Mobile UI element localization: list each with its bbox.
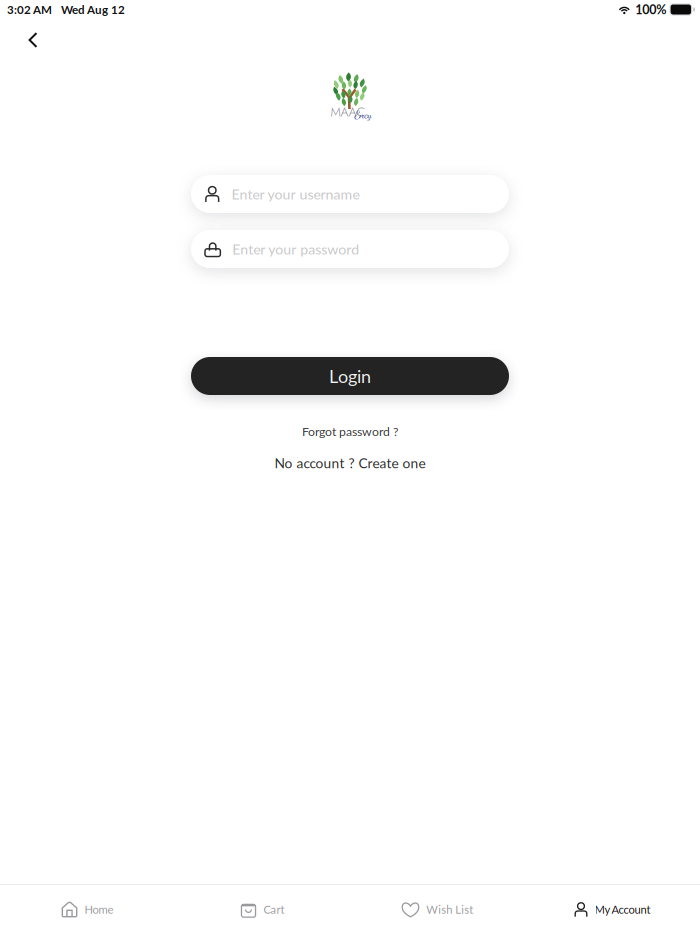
- staticText: Cart: [263, 903, 284, 916]
- staticText: MAAC: [330, 103, 365, 121]
- staticText: My Account: [595, 903, 651, 916]
- staticText: Login: [329, 365, 371, 387]
- button[interactable]: Cart: [175, 885, 350, 934]
- button[interactable]: Enter your password: [191, 230, 509, 268]
- staticText: Forgot password ?: [302, 424, 398, 439]
- staticText: Enter your username: [231, 185, 359, 202]
- button[interactable]: Home: [0, 885, 175, 934]
- button[interactable]: My Account: [525, 885, 700, 934]
- button[interactable]: Back: [16, 24, 50, 56]
- staticText: No account ? Create one: [274, 455, 425, 471]
- button[interactable]: No account ? Create one: [271, 452, 428, 474]
- staticText: Wed Aug 12: [61, 2, 125, 16]
- button[interactable]: Login: [191, 357, 509, 395]
- staticText: 3:02 AM: [7, 2, 52, 16]
- staticText: Wish List: [426, 903, 473, 916]
- staticText: 100%: [635, 2, 666, 17]
- button[interactable]: Forgot password ?: [299, 421, 401, 442]
- staticText: Enter your password: [232, 240, 359, 257]
- staticText: Ency: [354, 109, 371, 121]
- button[interactable]: Wish List: [350, 885, 525, 934]
- staticText: Home: [84, 903, 113, 916]
- button[interactable]: Enter your username: [191, 175, 509, 213]
